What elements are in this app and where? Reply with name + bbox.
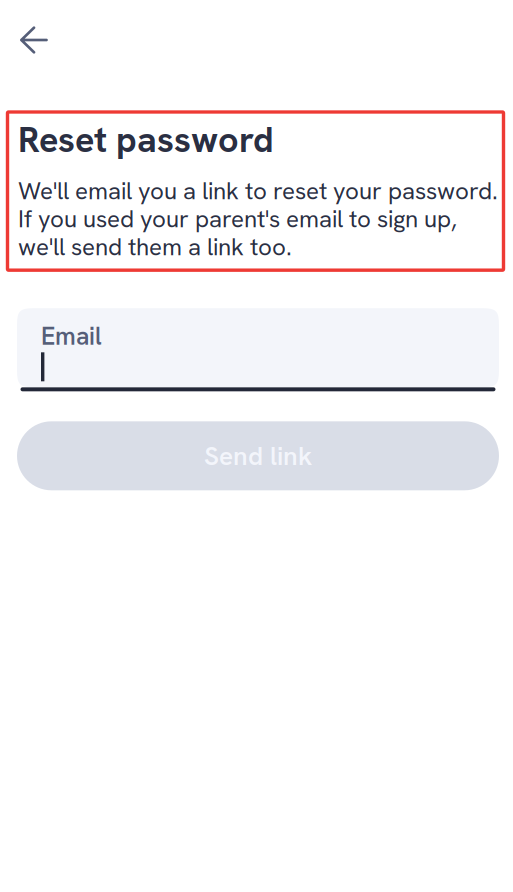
button[interactable]: Email [17,308,499,391]
staticText: Email [41,320,102,352]
staticText: Send link [204,439,312,473]
staticText: We'll email you a link to reset your pas… [18,177,498,261]
button[interactable]: Send link [17,421,499,490]
button[interactable]: Back [7,13,61,67]
staticText: Reset password [18,116,274,163]
